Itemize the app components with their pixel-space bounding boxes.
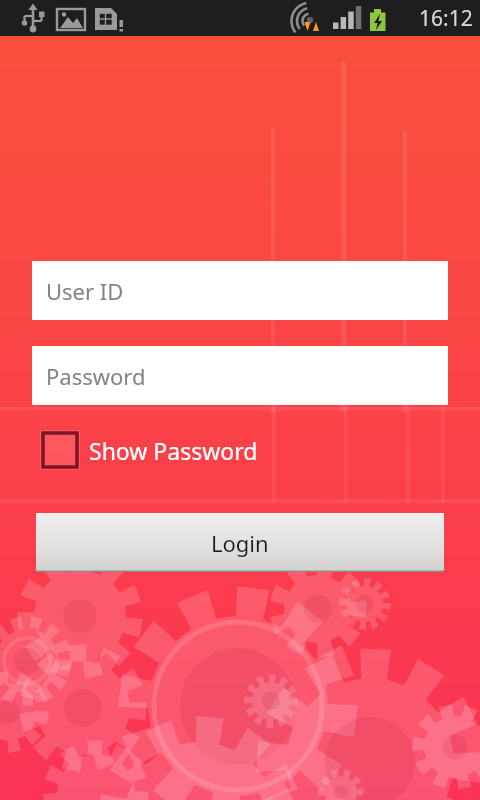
staticText: Login — [211, 528, 269, 558]
staticText: Password — [46, 361, 146, 391]
button[interactable]: Login — [36, 513, 444, 572]
staticText: User ID — [46, 276, 124, 306]
button[interactable]: Password — [32, 346, 448, 405]
button[interactable]: User ID — [32, 261, 448, 320]
staticText: Show Password — [89, 435, 258, 466]
staticText: 16:12 — [419, 4, 473, 33]
button[interactable]: Show Password checkbox — [40, 430, 258, 470]
other: Show Password checkbox — [40, 430, 80, 470]
